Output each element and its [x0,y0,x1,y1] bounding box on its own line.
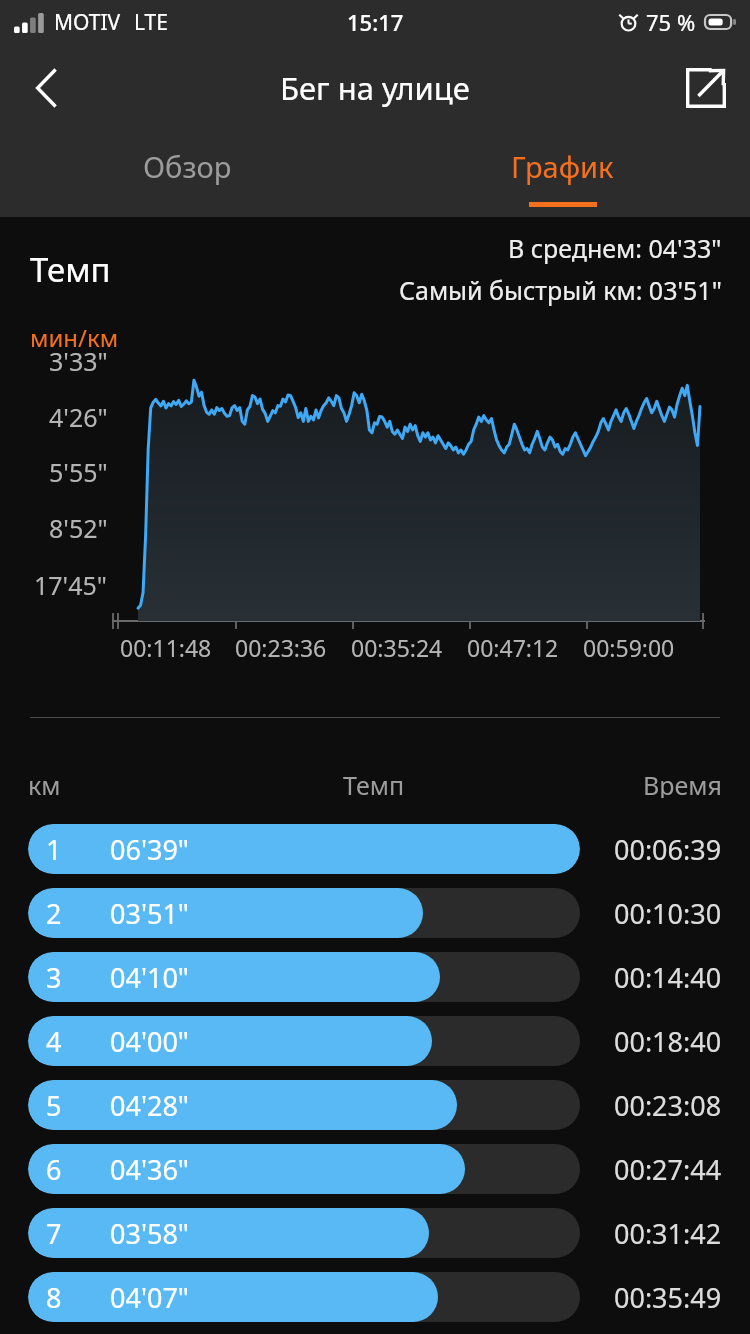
staticText: 7 [46,1215,62,1252]
staticText: LTE [134,8,168,37]
staticText: Время [643,768,722,798]
staticText: 03'58" [110,1215,189,1252]
button[interactable]: 6 [0,1144,750,1194]
staticText: 6 [46,1151,62,1188]
staticText: км [28,768,61,798]
staticText: 8'52" [49,511,108,545]
button[interactable]: Обзор [0,131,375,217]
staticText: Обзор [143,147,232,186]
staticText: 00:35:49 [614,1279,722,1316]
staticText: 04'28" [110,1087,189,1124]
staticText: 1 [46,831,62,868]
button[interactable]: 1 [0,824,750,874]
staticText: 00:14:40 [614,959,722,996]
button[interactable]: 7 [0,1208,750,1258]
staticText: 3 [46,959,62,996]
staticText: 00:10:30 [614,895,722,932]
staticText: 00:06:39 [614,831,722,868]
button[interactable]: 4 [0,1016,750,1066]
staticText: 00:18:40 [614,1023,722,1060]
button[interactable]: 3 [0,952,750,1002]
staticText: 00:31:42 [614,1215,722,1252]
button[interactable]: 2 [0,888,750,938]
staticText: 15:17 [347,7,404,37]
button[interactable]: График [375,131,750,217]
staticText: Темп [30,247,111,292]
button[interactable]: Back [0,44,92,131]
staticText: 00:47:12 [467,632,559,663]
staticText: 00:23:36 [235,632,327,663]
button[interactable]: 5 [0,1080,750,1130]
staticText: 00:59:00 [583,632,675,663]
staticText: мин/км [30,321,119,354]
staticText: 4 [46,1023,62,1060]
staticText: 17'45" [34,568,108,602]
staticText: 00:27:44 [614,1151,722,1188]
staticText: 5 [46,1087,62,1124]
staticText: MOTIV [54,8,121,37]
staticText: 00:23:08 [614,1087,722,1124]
staticText: Бег на улице [280,67,470,109]
staticText: 5'55" [49,455,108,489]
staticText: 03'51" [110,895,189,932]
staticText: 06'39" [110,831,189,868]
staticText: 04'07" [110,1279,189,1316]
staticText: 75 % [646,7,696,37]
staticText: 3'33" [49,344,108,378]
button[interactable]: Share [662,44,750,131]
staticText: Самый быстрый км: 03'51" [399,273,722,307]
staticText: 04'36" [110,1151,189,1188]
staticText: 8 [46,1279,62,1316]
staticText: 04'00" [110,1023,189,1060]
staticText: 00:35:24 [351,632,443,663]
staticText: В среднем: 04'33" [508,231,722,265]
staticText: 2 [46,895,62,932]
staticText: 04'10" [110,959,189,996]
staticText: График [511,147,614,186]
staticText: Темп [343,768,405,798]
staticText: 4'26" [49,400,108,434]
button[interactable]: 8 [0,1272,750,1322]
staticText: 00:11:48 [120,632,212,663]
